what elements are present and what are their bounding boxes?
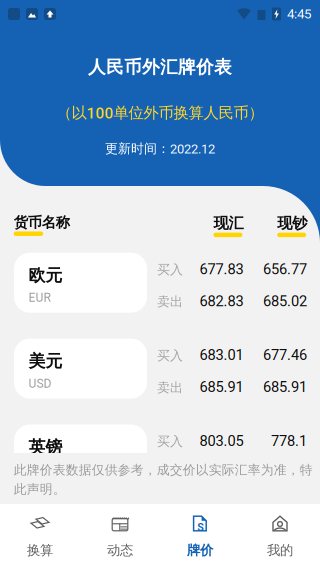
staticText: 我的 bbox=[267, 542, 293, 559]
staticText: 677.46 bbox=[263, 346, 307, 364]
button[interactable]: 换算 bbox=[0, 504, 80, 569]
staticText: 卖出 bbox=[157, 294, 183, 310]
staticText: 682.83 bbox=[199, 293, 243, 310]
staticText: 685.91 bbox=[199, 378, 243, 396]
staticText: 换算 bbox=[27, 542, 53, 559]
button[interactable]: 英镑 bbox=[0, 424, 320, 484]
staticText: S bbox=[197, 521, 204, 533]
staticText: 4:45 bbox=[287, 6, 311, 22]
staticText: 683.01 bbox=[199, 346, 243, 364]
staticText: 685.91 bbox=[263, 378, 307, 396]
staticText: 动态 bbox=[107, 542, 133, 559]
staticText: GBP bbox=[28, 462, 51, 477]
button[interactable]: 美元 bbox=[0, 339, 320, 399]
staticText: USD bbox=[28, 377, 51, 391]
button[interactable]: 动态 bbox=[80, 504, 160, 569]
staticText: 卖出 bbox=[157, 465, 183, 482]
button[interactable]: 欧元 bbox=[0, 253, 320, 313]
button[interactable]: 我的 bbox=[240, 504, 320, 569]
staticText: 此声明。 bbox=[14, 481, 66, 497]
staticText: 美元 bbox=[28, 351, 62, 372]
staticText: 买入 bbox=[157, 347, 183, 364]
staticText: 更新时间：2022.12 bbox=[105, 140, 215, 157]
staticText: 人民币外汇牌价表 bbox=[88, 56, 232, 78]
staticText: 778.1 bbox=[271, 432, 307, 450]
staticText: （以100单位外币换算人民币） bbox=[56, 103, 263, 122]
staticText: 656.77 bbox=[263, 261, 307, 278]
staticText: 英镑 bbox=[28, 436, 62, 458]
staticText: 欧元 bbox=[28, 265, 62, 286]
staticText: 808.80 bbox=[199, 464, 243, 482]
staticText: 677.83 bbox=[199, 261, 243, 278]
staticText: EUR bbox=[28, 291, 50, 305]
staticText: 牌价 bbox=[187, 542, 213, 559]
staticText: 803.05 bbox=[199, 432, 243, 450]
staticText: 买入 bbox=[157, 433, 183, 450]
staticText: 此牌价表数据仅供参考，成交价以实际汇率为准，特 bbox=[14, 462, 313, 478]
button[interactable]: S bbox=[160, 504, 240, 569]
staticText: 现钞 bbox=[277, 213, 307, 233]
staticText: 货币名称 bbox=[14, 213, 70, 231]
staticText: 卖出 bbox=[157, 379, 183, 396]
staticText: 现汇 bbox=[213, 213, 243, 233]
staticText: 812.40 bbox=[263, 464, 307, 482]
staticText: 买入 bbox=[157, 262, 183, 278]
staticText: 685.02 bbox=[263, 293, 307, 310]
